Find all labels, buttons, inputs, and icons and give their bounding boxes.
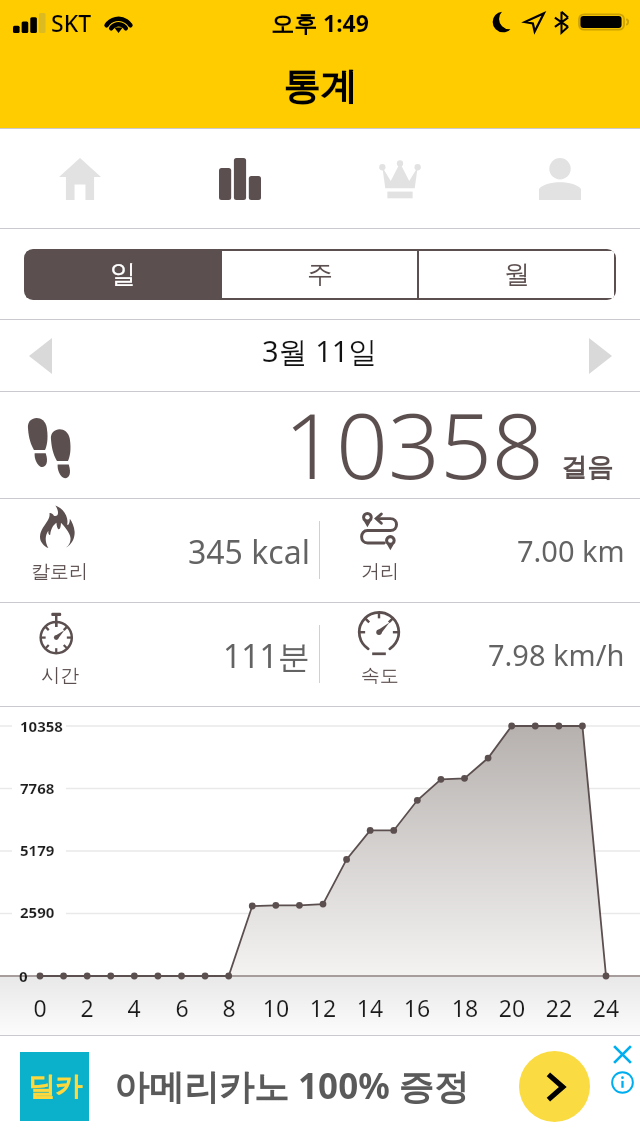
button[interactable]: Profile xyxy=(480,129,640,228)
staticText: 7.98 km/h xyxy=(488,635,625,674)
button[interactable]: 주 xyxy=(222,251,417,298)
staticText: 18 xyxy=(445,992,485,1023)
button[interactable]: Next day xyxy=(560,320,640,391)
staticText: 딜카 xyxy=(28,1070,82,1104)
button[interactable]: Previous day xyxy=(0,320,80,391)
button[interactable]: Advertisement information xyxy=(611,1071,634,1094)
button[interactable]: Home xyxy=(0,129,160,228)
staticText: 0 xyxy=(20,992,60,1023)
staticText: 칼로리 xyxy=(31,560,88,584)
staticText: SKT xyxy=(51,7,92,38)
staticText: 8 xyxy=(209,992,249,1023)
staticText: 2590 xyxy=(20,902,55,922)
staticText: 7.00 km xyxy=(517,531,625,570)
staticText: 5179 xyxy=(20,840,55,860)
staticText: 걸음 xyxy=(561,451,613,484)
button[interactable]: 칼로리 xyxy=(0,499,640,602)
button[interactable]: 딜카 xyxy=(0,1036,640,1136)
staticText: 20 xyxy=(492,992,532,1023)
staticText: 월 xyxy=(504,258,530,291)
button[interactable]: Statistics xyxy=(160,129,320,228)
staticText: 16 xyxy=(397,992,437,1023)
staticText: 2 xyxy=(67,992,107,1023)
button[interactable]: Open advertisement xyxy=(519,1051,590,1122)
staticText: 10358 xyxy=(284,382,544,488)
staticText: 111분 xyxy=(223,634,310,678)
staticText: 거리 xyxy=(361,560,399,584)
staticText: 아메리카노 100% 증정 xyxy=(114,1062,469,1110)
staticText: 시간 xyxy=(41,664,79,688)
button[interactable]: Ranking xyxy=(320,129,480,228)
staticText: 4 xyxy=(114,992,154,1023)
button[interactable]: 월 xyxy=(419,251,614,298)
staticText: 6 xyxy=(162,992,202,1023)
button[interactable]: 10358 xyxy=(0,392,640,498)
staticText: 3월 11일 xyxy=(262,331,378,371)
button[interactable]: 일 xyxy=(26,251,220,298)
staticText: 22 xyxy=(539,992,579,1023)
button[interactable]: 시간 xyxy=(0,603,640,706)
staticText: 14 xyxy=(350,992,390,1023)
staticText: 10 xyxy=(256,992,296,1023)
staticText: 통계 xyxy=(283,63,357,110)
staticText: 오후 1:49 xyxy=(271,7,369,38)
staticText: 12 xyxy=(303,992,343,1023)
staticText: 일 xyxy=(110,258,136,291)
staticText: 24 xyxy=(586,992,626,1023)
staticText: 주 xyxy=(307,258,333,291)
staticText: 7768 xyxy=(20,778,55,798)
staticText: 345 kcal xyxy=(188,530,310,574)
staticText: 속도 xyxy=(361,664,399,688)
button[interactable]: Close advertisement xyxy=(612,1044,633,1065)
staticText: 10358 xyxy=(20,716,63,736)
staticText: 0 xyxy=(19,966,28,986)
